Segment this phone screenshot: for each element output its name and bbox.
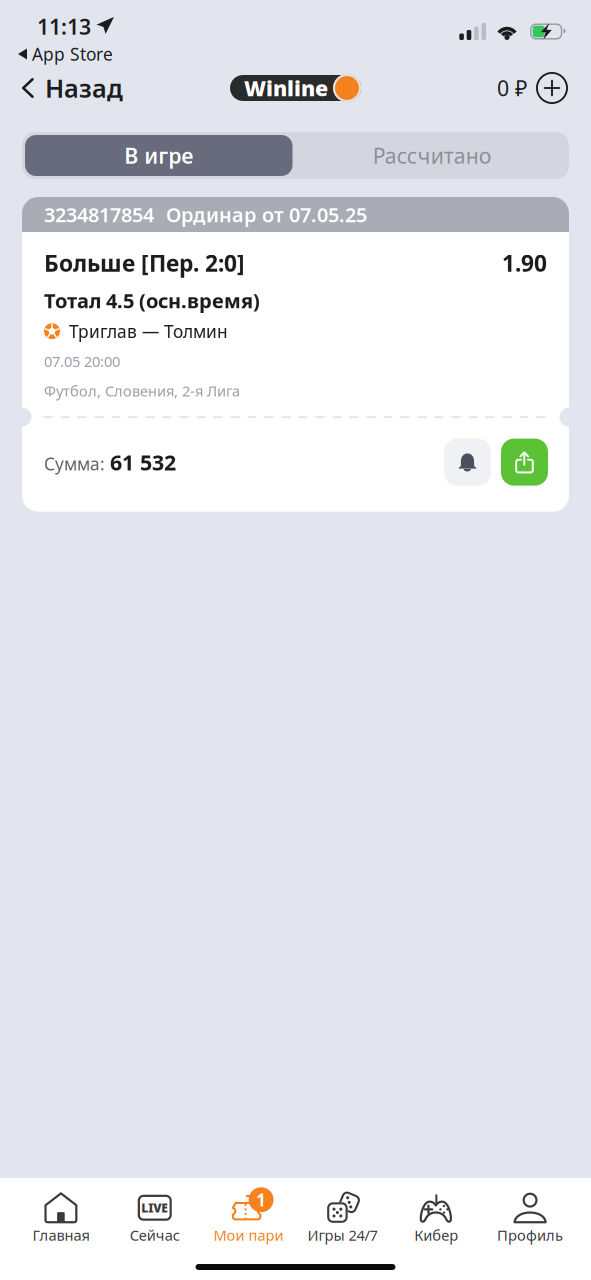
button[interactable]: В игре	[22, 132, 295, 179]
staticText: Кибер	[414, 1225, 458, 1245]
staticText: LIVE	[141, 1200, 168, 1216]
staticText: 1	[256, 1188, 266, 1211]
staticText: Профиль	[497, 1225, 563, 1245]
staticText: 61 532	[110, 448, 176, 476]
button[interactable]: 1	[202, 1190, 295, 1246]
staticText: Сейчас	[130, 1225, 180, 1245]
staticText: 1.90	[502, 248, 547, 278]
button[interactable]: Кибер	[389, 1190, 483, 1246]
staticText: Триглав — Толмин	[69, 320, 228, 343]
button[interactable]: Рассчитано	[295, 132, 569, 179]
staticText: Рассчитано	[373, 141, 492, 170]
button[interactable]: Уведомления	[444, 439, 491, 486]
staticText: Главная	[32, 1225, 89, 1245]
staticText: Футбол, Словения, 2-я Лига	[44, 381, 240, 401]
button[interactable]: Поделиться	[501, 439, 548, 486]
staticText: Тотал 4.5 (осн.время)	[44, 287, 260, 314]
staticText: 0 ₽	[497, 74, 527, 102]
staticText: Сумма:	[44, 452, 105, 475]
staticText: 3234817854	[44, 201, 154, 228]
button[interactable]: Игры 24/7	[295, 1190, 389, 1246]
staticText: В игре	[124, 141, 193, 170]
button[interactable]: Пополнить счёт	[497, 66, 591, 110]
button[interactable]: Главная	[14, 1190, 108, 1246]
staticText: Winline	[244, 74, 328, 102]
staticText: Мои пари	[214, 1225, 284, 1245]
staticText: Игры 24/7	[307, 1225, 377, 1245]
button[interactable]: LIVE	[108, 1190, 202, 1246]
staticText: Больше [Пер. 2:0]	[44, 248, 245, 278]
staticText: 07.05 20:00	[44, 352, 120, 371]
button[interactable]: Назад	[0, 66, 135, 110]
staticText: 11:13	[37, 12, 91, 41]
staticText: Назад	[45, 71, 123, 105]
button[interactable]: Профиль	[483, 1190, 577, 1246]
staticText: App Store	[32, 42, 113, 65]
staticText: Ординар от 07.05.25	[166, 201, 367, 228]
